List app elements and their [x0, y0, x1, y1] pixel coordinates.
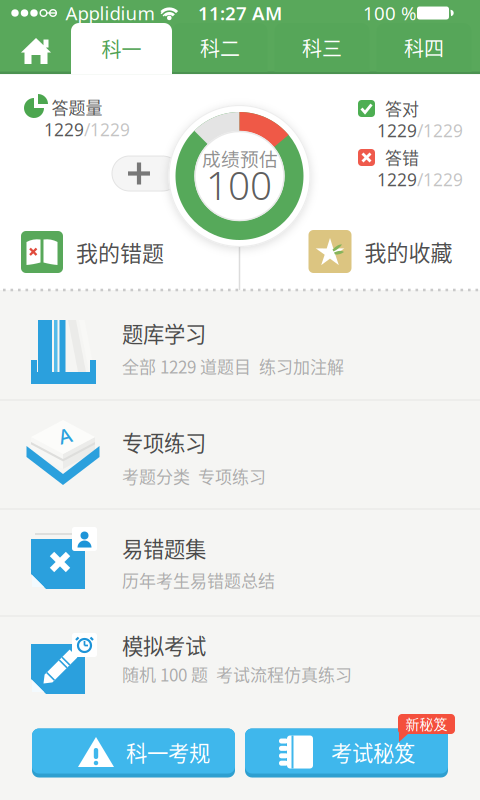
staticText: 1229 [44, 118, 84, 141]
button[interactable]: 科一考规 [32, 728, 235, 777]
button[interactable]: 科三 [274, 23, 369, 72]
staticText: 我的收藏 [364, 236, 452, 267]
button[interactable]: 我的收藏 [308, 230, 452, 273]
staticText: 新秘笈 [405, 713, 447, 734]
button[interactable]: 我的错题 [21, 231, 164, 273]
staticText: 答题量 [51, 95, 102, 119]
button[interactable]: 模拟考试 [0, 616, 480, 718]
button[interactable]: 题库学习 [0, 290, 480, 400]
staticText: 100 % [363, 1, 417, 25]
staticText: 易错题集 [122, 533, 206, 563]
staticText: 历年考生易错题总结 [122, 568, 275, 592]
button[interactable]: 考试秘笈 [245, 728, 448, 777]
staticText: 1229 [377, 119, 417, 142]
staticText: 专项练习 [122, 427, 206, 457]
button[interactable]: A [0, 400, 480, 509]
staticText: 科四 [404, 33, 444, 62]
staticText: 答对 [385, 96, 419, 120]
staticText: 科二 [200, 33, 240, 62]
staticText: 11:27 AM [198, 1, 282, 25]
staticText: Applidium [65, 1, 154, 25]
staticText: 题库学习 [122, 318, 206, 348]
staticText: 答错 [385, 145, 419, 169]
staticText: /1229 [84, 118, 130, 141]
staticText: 模拟考试 [122, 630, 206, 660]
staticText: 我的错题 [76, 236, 164, 268]
button[interactable]: 科四 [376, 23, 471, 72]
staticText: 1229 [377, 168, 417, 191]
staticText: 100 [206, 159, 272, 211]
staticText: 科一考规 [126, 737, 210, 767]
staticText: 全部 1229 道题目 练习加注解 [122, 354, 344, 378]
button[interactable]: Home [16, 33, 56, 67]
staticText: 考试秘笈 [331, 737, 415, 767]
staticText: 随机 100 题 考试流程仿真练习 [122, 662, 352, 686]
staticText: A [58, 422, 71, 449]
button[interactable]: Add [112, 156, 180, 191]
button[interactable]: 易错题集 [0, 509, 480, 616]
button[interactable]: 科二 [172, 23, 267, 72]
staticText: /1229 [417, 168, 463, 191]
staticText: 成绩预估 [202, 144, 278, 171]
staticText: 科一 [101, 34, 141, 63]
staticText: /1229 [417, 119, 463, 142]
staticText: 科三 [302, 33, 342, 62]
button[interactable]: 科一 [71, 23, 172, 74]
staticText: 考题分类 专项练习 [122, 464, 266, 488]
